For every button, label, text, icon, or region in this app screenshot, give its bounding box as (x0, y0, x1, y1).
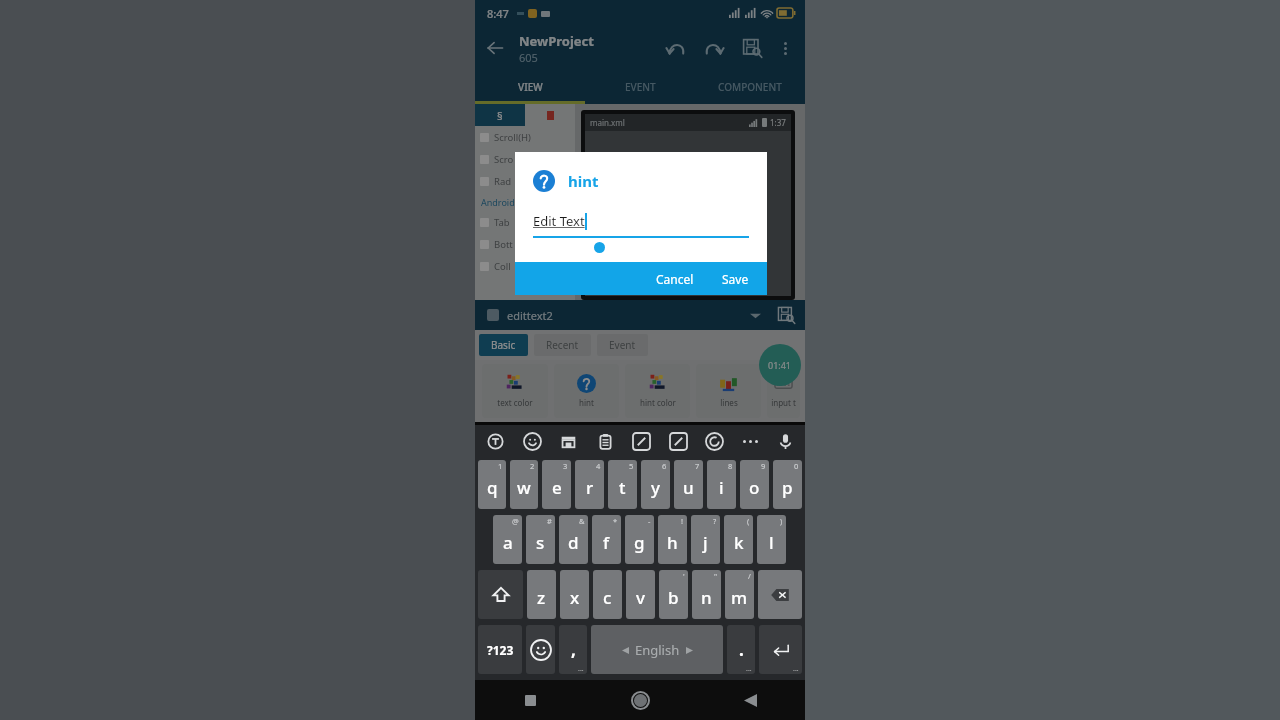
button[interactable]: More (739, 430, 761, 452)
button[interactable]: & (559, 515, 588, 564)
button[interactable]: Event (597, 334, 648, 356)
staticText: Save (722, 271, 749, 287)
button[interactable]: Search (702, 429, 726, 453)
button[interactable]: Back (695, 680, 805, 720)
button[interactable]: @ (493, 515, 522, 564)
button[interactable]: , (559, 625, 587, 674)
button[interactable]: Basic (479, 334, 528, 356)
button[interactable]: COMPONENT (695, 70, 805, 104)
staticText: g (634, 531, 645, 554)
button[interactable]: Sticker (556, 429, 580, 453)
button[interactable]: Settings (629, 429, 653, 453)
button[interactable]: Save (733, 29, 771, 67)
button[interactable]: 4 (575, 460, 604, 509)
button[interactable]: Numbers (666, 429, 690, 453)
button[interactable]: Save (708, 265, 767, 293)
button[interactable]: Voice input (773, 429, 797, 453)
staticText: Cancel (656, 271, 694, 287)
staticText: j (703, 531, 708, 554)
button[interactable]: Key (759, 625, 802, 674)
button[interactable] (525, 104, 575, 126)
button[interactable]: Undo (657, 29, 695, 67)
button[interactable]: Rad (480, 170, 575, 192)
button[interactable]: edittext2 (475, 300, 805, 330)
staticText: Event (609, 338, 636, 352)
button[interactable]: VIEW (475, 70, 585, 104)
button[interactable]: More options (771, 34, 799, 62)
button[interactable]: Save project (775, 304, 797, 326)
button[interactable]: x (560, 570, 589, 619)
button[interactable]: Key (478, 570, 523, 619)
staticText: h (667, 531, 678, 554)
button[interactable]: - (625, 515, 654, 564)
button[interactable]: Tab (480, 211, 575, 233)
staticText: k (734, 531, 744, 554)
button[interactable]: ?123 (478, 625, 522, 674)
button[interactable]: ! (658, 515, 687, 564)
button[interactable]: 9 (740, 460, 769, 509)
button[interactable]: / (725, 570, 754, 619)
staticText: Tab (494, 216, 510, 229)
button[interactable]: Back (475, 28, 515, 68)
button[interactable]: hint (554, 364, 619, 418)
button[interactable]: Key (758, 570, 802, 619)
staticText: q (487, 476, 498, 499)
staticText: 7 (695, 461, 700, 471)
button[interactable]: 2 (510, 460, 538, 509)
button[interactable]: 0 (773, 460, 802, 509)
button[interactable]: Emoji (520, 429, 544, 453)
staticText: VIEW (518, 80, 543, 94)
staticText: ... (793, 664, 799, 674)
button[interactable]: lines (696, 364, 761, 418)
button[interactable]: v (626, 570, 655, 619)
button[interactable]: # (526, 515, 555, 564)
button[interactable]: ' (659, 570, 688, 619)
button[interactable]: ) (757, 515, 786, 564)
staticText: n (701, 586, 712, 609)
staticText: t (619, 476, 626, 499)
button[interactable]: ? (691, 515, 720, 564)
staticText: Coll (494, 260, 511, 273)
button[interactable]: Recent (534, 334, 591, 356)
staticText: 8 (728, 461, 733, 471)
button[interactable]: 8 (707, 460, 736, 509)
button[interactable]: Key (526, 625, 555, 674)
button[interactable]: English (591, 625, 723, 674)
button[interactable]: ( (724, 515, 753, 564)
button[interactable]: . (727, 625, 755, 674)
button[interactable]: 3 (542, 460, 571, 509)
staticText: Basic (491, 338, 516, 352)
button[interactable]: Translate (483, 429, 507, 453)
staticText: hint (568, 171, 599, 191)
button[interactable]: c (593, 570, 622, 619)
button[interactable]: Scroll(H) (480, 126, 575, 148)
button[interactable]: 6 (641, 460, 670, 509)
staticText: s (536, 531, 545, 554)
button[interactable]: hint color (625, 364, 690, 418)
staticText: Android (481, 196, 515, 208)
button[interactable]: z (527, 570, 556, 619)
staticText: ? (713, 516, 717, 526)
button[interactable]: input t (767, 364, 800, 418)
button[interactable]: text color (482, 364, 548, 418)
staticText: Edit Text (533, 212, 585, 230)
button[interactable]: Recents (475, 680, 585, 720)
button[interactable]: Bott (480, 233, 575, 255)
staticText: English (635, 641, 680, 659)
button[interactable]: 1 (478, 460, 506, 509)
staticText: ?123 (487, 642, 514, 658)
button[interactable]: * (592, 515, 621, 564)
staticText: v (636, 586, 645, 609)
button[interactable]: Coll (480, 255, 575, 277)
button[interactable]: § (475, 104, 525, 126)
button[interactable]: Clipboard (593, 429, 617, 453)
button[interactable]: Home (585, 680, 695, 720)
button[interactable]: 7 (674, 460, 703, 509)
button[interactable]: 5 (608, 460, 637, 509)
button[interactable]: EVENT (585, 70, 695, 104)
button[interactable]: Scro (480, 148, 575, 170)
button[interactable]: Cancel (642, 265, 708, 293)
staticText: 2 (530, 461, 535, 471)
button[interactable]: " (692, 570, 721, 619)
button[interactable]: Redo (695, 29, 733, 67)
